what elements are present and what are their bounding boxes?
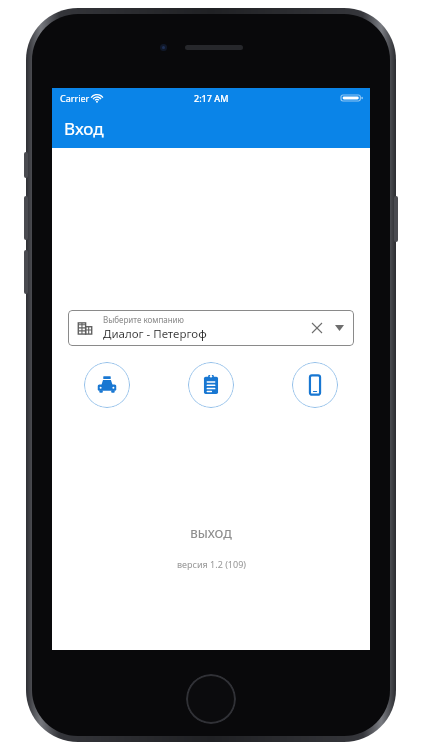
button[interactable]: Заказы [188,362,234,408]
button[interactable]: Очистить [306,317,328,339]
button[interactable]: Открыть список [328,317,350,339]
button[interactable]: Выберите компанию [68,310,354,346]
button[interactable]: Такси [84,362,130,408]
staticText: 2:17 AM [194,92,229,104]
staticText: Диалог - Петергоф [103,326,207,342]
staticText: версия 1.2 (109) [177,558,246,570]
button[interactable]: ВЫХОД [174,520,248,548]
staticText: Carrier [60,92,90,104]
button[interactable]: Телефон [292,362,338,408]
staticText: Выберите компанию [103,314,184,325]
staticText: Вход [64,117,104,140]
staticText: ВЫХОД [190,526,232,542]
